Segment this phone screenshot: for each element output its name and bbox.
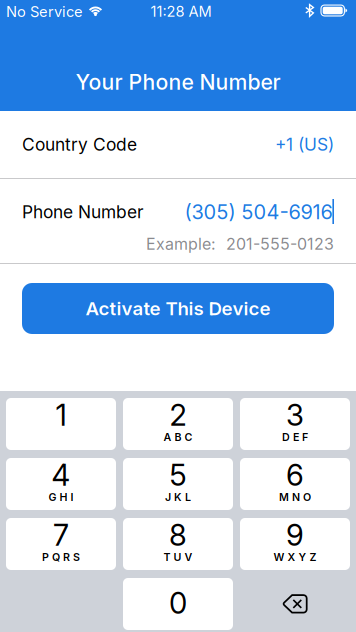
button[interactable]: Country Code [0,111,356,178]
staticText: 1 [55,398,66,432]
button[interactable]: 0 [123,578,233,630]
staticText: P Q R S [42,551,80,563]
staticText: J K L [165,491,191,503]
staticText: +1 (US) [275,134,334,155]
staticText: T U V [163,551,192,563]
staticText: 8 [169,518,187,552]
button[interactable]: Delete [240,578,350,630]
staticText: Your Phone Number [75,69,280,95]
button[interactable]: 7 [6,518,116,570]
staticText: 11:28 AM [150,3,211,20]
staticText: No Service [6,3,83,20]
staticText: 0 [169,586,187,620]
button[interactable]: 8 [123,518,233,570]
button[interactable]: 9 [240,518,350,570]
staticText: G H I [48,491,73,503]
staticText: 9 [286,518,304,552]
staticText: D E F [282,431,308,443]
staticText: Activate This Device [85,297,270,319]
staticText: 5 [169,458,186,492]
button[interactable]: Activate This Device [22,283,334,334]
staticText: Example: 201-555-0123 [146,235,334,253]
button[interactable]: 3 [240,398,350,450]
staticText: 6 [286,458,304,492]
staticText: 2 [169,398,186,432]
button[interactable]: 6 [240,458,350,510]
staticText: 4 [51,458,70,492]
staticText: 3 [286,398,304,432]
button[interactable]: 4 [6,458,116,510]
button[interactable]: 1 [6,398,116,450]
staticText: Country Code [22,134,137,155]
button[interactable]: 2 [123,398,233,450]
staticText: A B C [163,431,192,443]
staticText: Phone Number [22,202,144,222]
staticText: 7 [53,518,69,552]
staticText: M N O [279,491,311,503]
staticText: (305) 504-6916 [184,200,332,224]
staticText: W X Y Z [273,551,316,563]
button[interactable]: 5 [123,458,233,510]
